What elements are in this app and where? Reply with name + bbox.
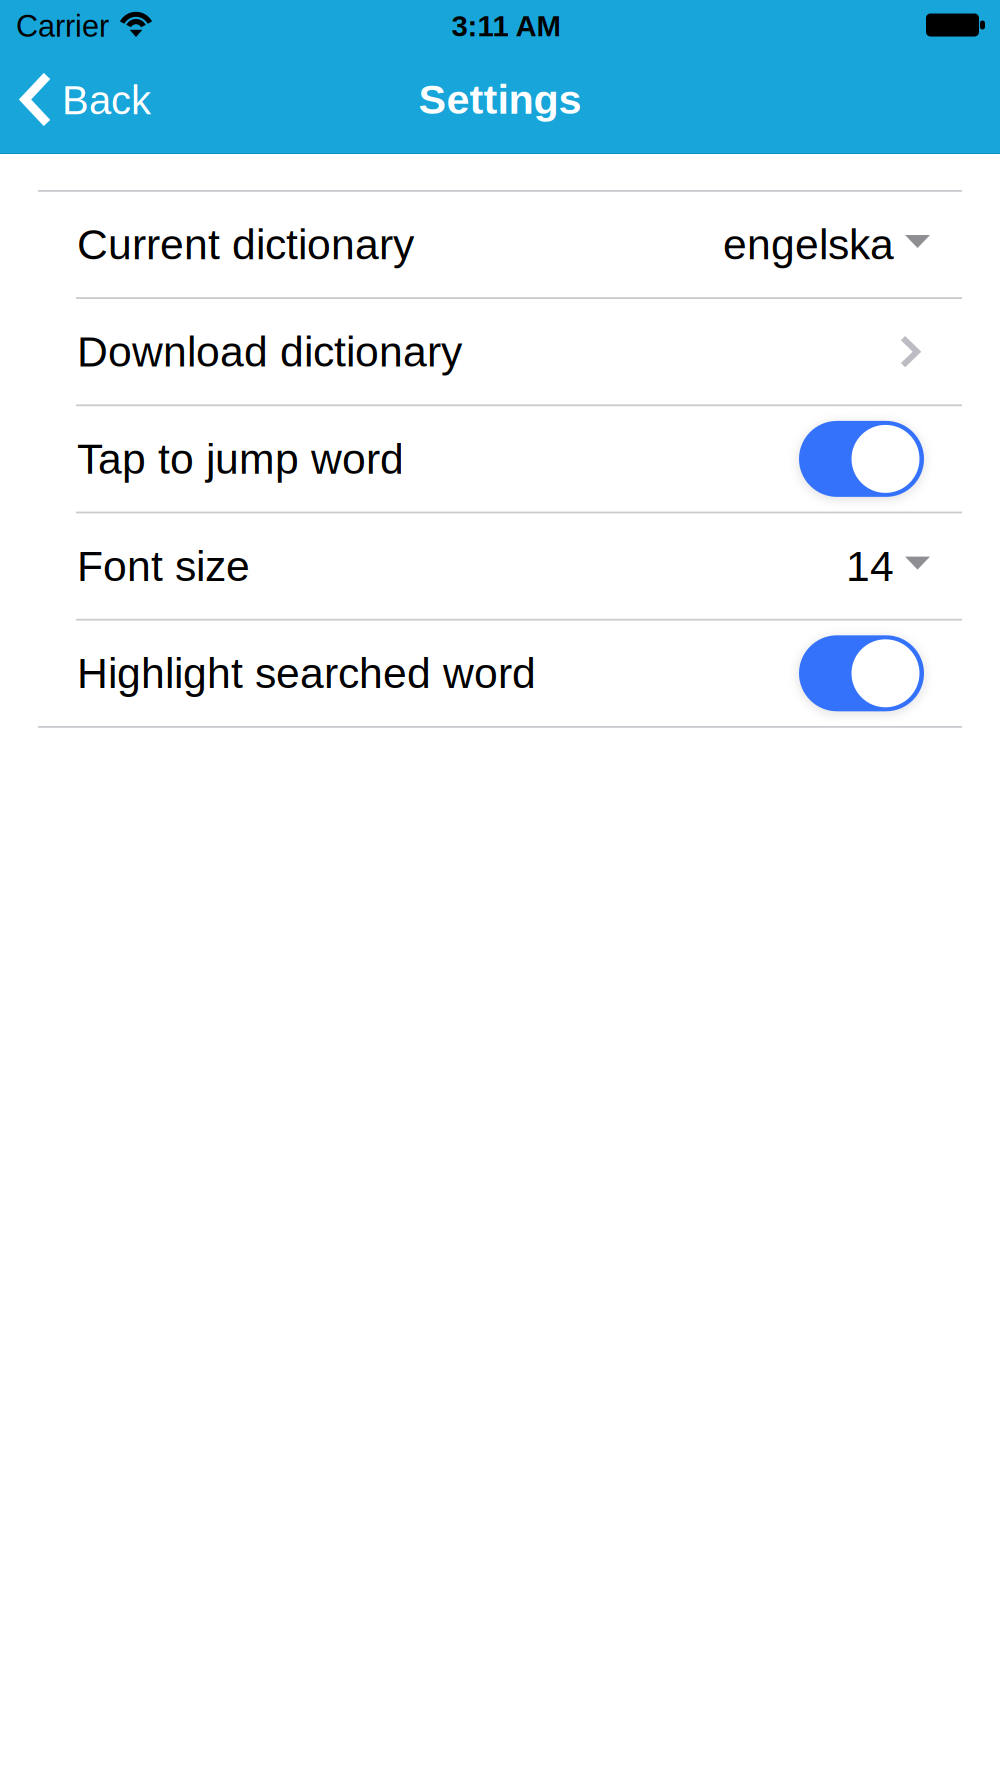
button[interactable]: Highlight searched word	[0, 621, 1000, 726]
button[interactable]: Tap to jump word	[0, 406, 1000, 512]
button[interactable]: Font size	[0, 513, 1000, 619]
staticText: Font size	[77, 542, 250, 590]
staticText: engelska	[723, 221, 894, 268]
staticText: Current dictionary	[77, 221, 414, 268]
staticText: Highlight searched word	[77, 649, 536, 697]
button[interactable]: Current dictionary	[0, 192, 1000, 297]
staticText: 3:11 AM	[451, 10, 560, 42]
staticText: Back	[62, 78, 151, 123]
button[interactable]: Back	[0, 58, 175, 153]
button[interactable]: Tap to jump word, on	[799, 421, 924, 497]
staticText: Tap to jump word	[77, 435, 404, 483]
staticText: Settings	[418, 76, 581, 123]
button[interactable]: Download dictionary	[0, 299, 1000, 404]
staticText: 14	[846, 542, 894, 590]
button[interactable]: Highlight searched word, on	[799, 635, 924, 711]
staticText: Download dictionary	[77, 328, 462, 376]
staticText: Carrier	[16, 9, 109, 43]
